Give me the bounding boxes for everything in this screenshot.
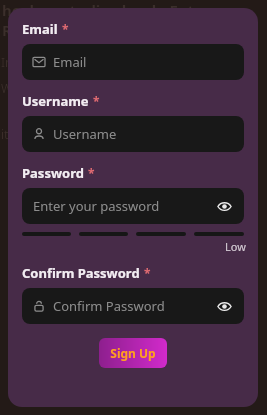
button[interactable]: Show password (215, 197, 233, 215)
staticText: Password (22, 164, 84, 182)
staticText: he decentralized web. Future-Ready (2, 0, 267, 40)
staticText: Enter your password (33, 197, 215, 215)
staticText: Username (22, 92, 89, 110)
staticText: * (93, 93, 100, 109)
staticText: Confirm Password (53, 297, 215, 315)
staticText: Confirm Password (22, 264, 140, 282)
staticText: Low (225, 239, 246, 254)
staticText: Email (53, 53, 233, 71)
staticText: Email (22, 20, 58, 38)
staticText: Sign Up (110, 345, 156, 361)
button[interactable]: Username (22, 116, 244, 152)
button[interactable]: Sign Up (99, 338, 167, 368)
staticText: W (1, 80, 13, 96)
button[interactable]: Show password (215, 297, 233, 315)
staticText: * (62, 21, 69, 37)
button[interactable]: Email (22, 44, 244, 80)
staticText: * (88, 165, 95, 181)
staticText: * (144, 265, 151, 281)
staticText: Username (53, 125, 233, 143)
staticText: In (1, 54, 13, 70)
staticText: it (1, 126, 9, 142)
button[interactable]: Enter your password (22, 188, 244, 224)
button[interactable]: Confirm Password (22, 288, 244, 324)
